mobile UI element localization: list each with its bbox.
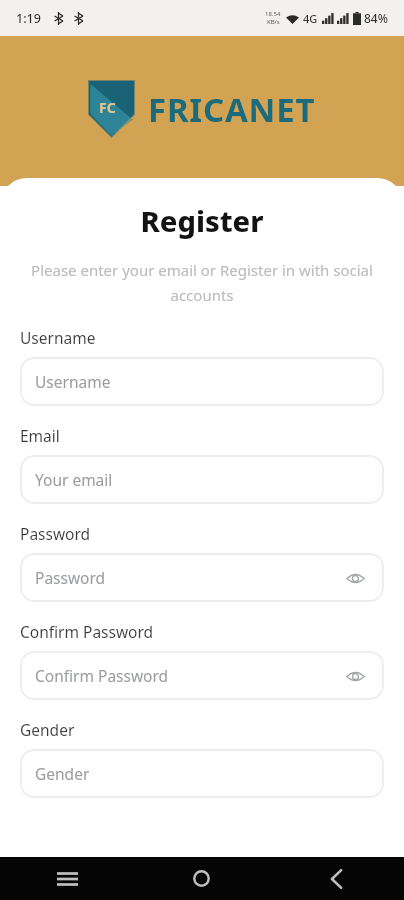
staticText: Gender xyxy=(20,719,75,740)
staticText: Username xyxy=(20,327,96,348)
button[interactable]: Show password xyxy=(341,662,369,690)
staticText: 1:19 xyxy=(16,10,41,27)
button[interactable]: Password xyxy=(20,553,384,602)
staticText: Please enter your email or Register in w… xyxy=(20,260,384,305)
staticText: 18.54 xyxy=(265,10,281,18)
staticText: Your email xyxy=(35,469,369,490)
staticText: FC xyxy=(99,98,116,117)
staticText: Email xyxy=(20,425,60,446)
staticText: Username xyxy=(35,371,369,392)
staticText: Register xyxy=(20,201,384,240)
button[interactable]: Gender xyxy=(20,749,384,798)
staticText: FRICANET xyxy=(148,87,316,132)
staticText: Password xyxy=(20,523,91,544)
staticText: KB/s xyxy=(267,18,280,26)
button[interactable]: Home xyxy=(134,857,269,900)
staticText: Confirm Password xyxy=(35,665,341,686)
button[interactable]: Confirm Password xyxy=(20,651,384,700)
staticText: 84% xyxy=(364,10,388,26)
button[interactable]: Back xyxy=(269,857,404,900)
button[interactable]: Show password xyxy=(341,564,369,592)
staticText: 4G xyxy=(303,11,318,26)
button[interactable]: Recents xyxy=(0,857,134,900)
button[interactable]: Username xyxy=(20,357,384,406)
staticText: Confirm Password xyxy=(20,621,154,642)
staticText: Gender xyxy=(35,763,369,784)
button[interactable]: Your email xyxy=(20,455,384,504)
staticText: Password xyxy=(35,567,341,588)
